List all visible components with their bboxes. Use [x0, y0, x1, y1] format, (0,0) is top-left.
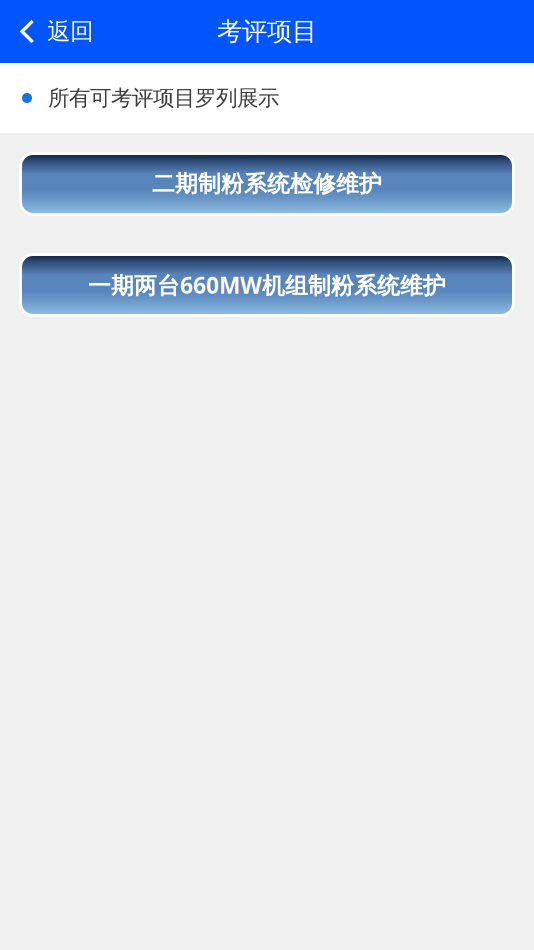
staticText: 所有可考评项目罗列展示 [48, 84, 279, 111]
staticText: 返回 [47, 17, 93, 46]
button[interactable]: 二期制粉系统检修维护 [19, 152, 515, 216]
button[interactable]: 一期两台660MW机组制粉系统维护 [19, 253, 515, 317]
staticText: 一期两台660MW机组制粉系统维护 [88, 270, 446, 300]
button[interactable]: 返回 [0, 0, 108, 63]
staticText: 二期制粉系统检修维护 [152, 170, 382, 198]
staticText: 考评项目 [217, 15, 317, 47]
